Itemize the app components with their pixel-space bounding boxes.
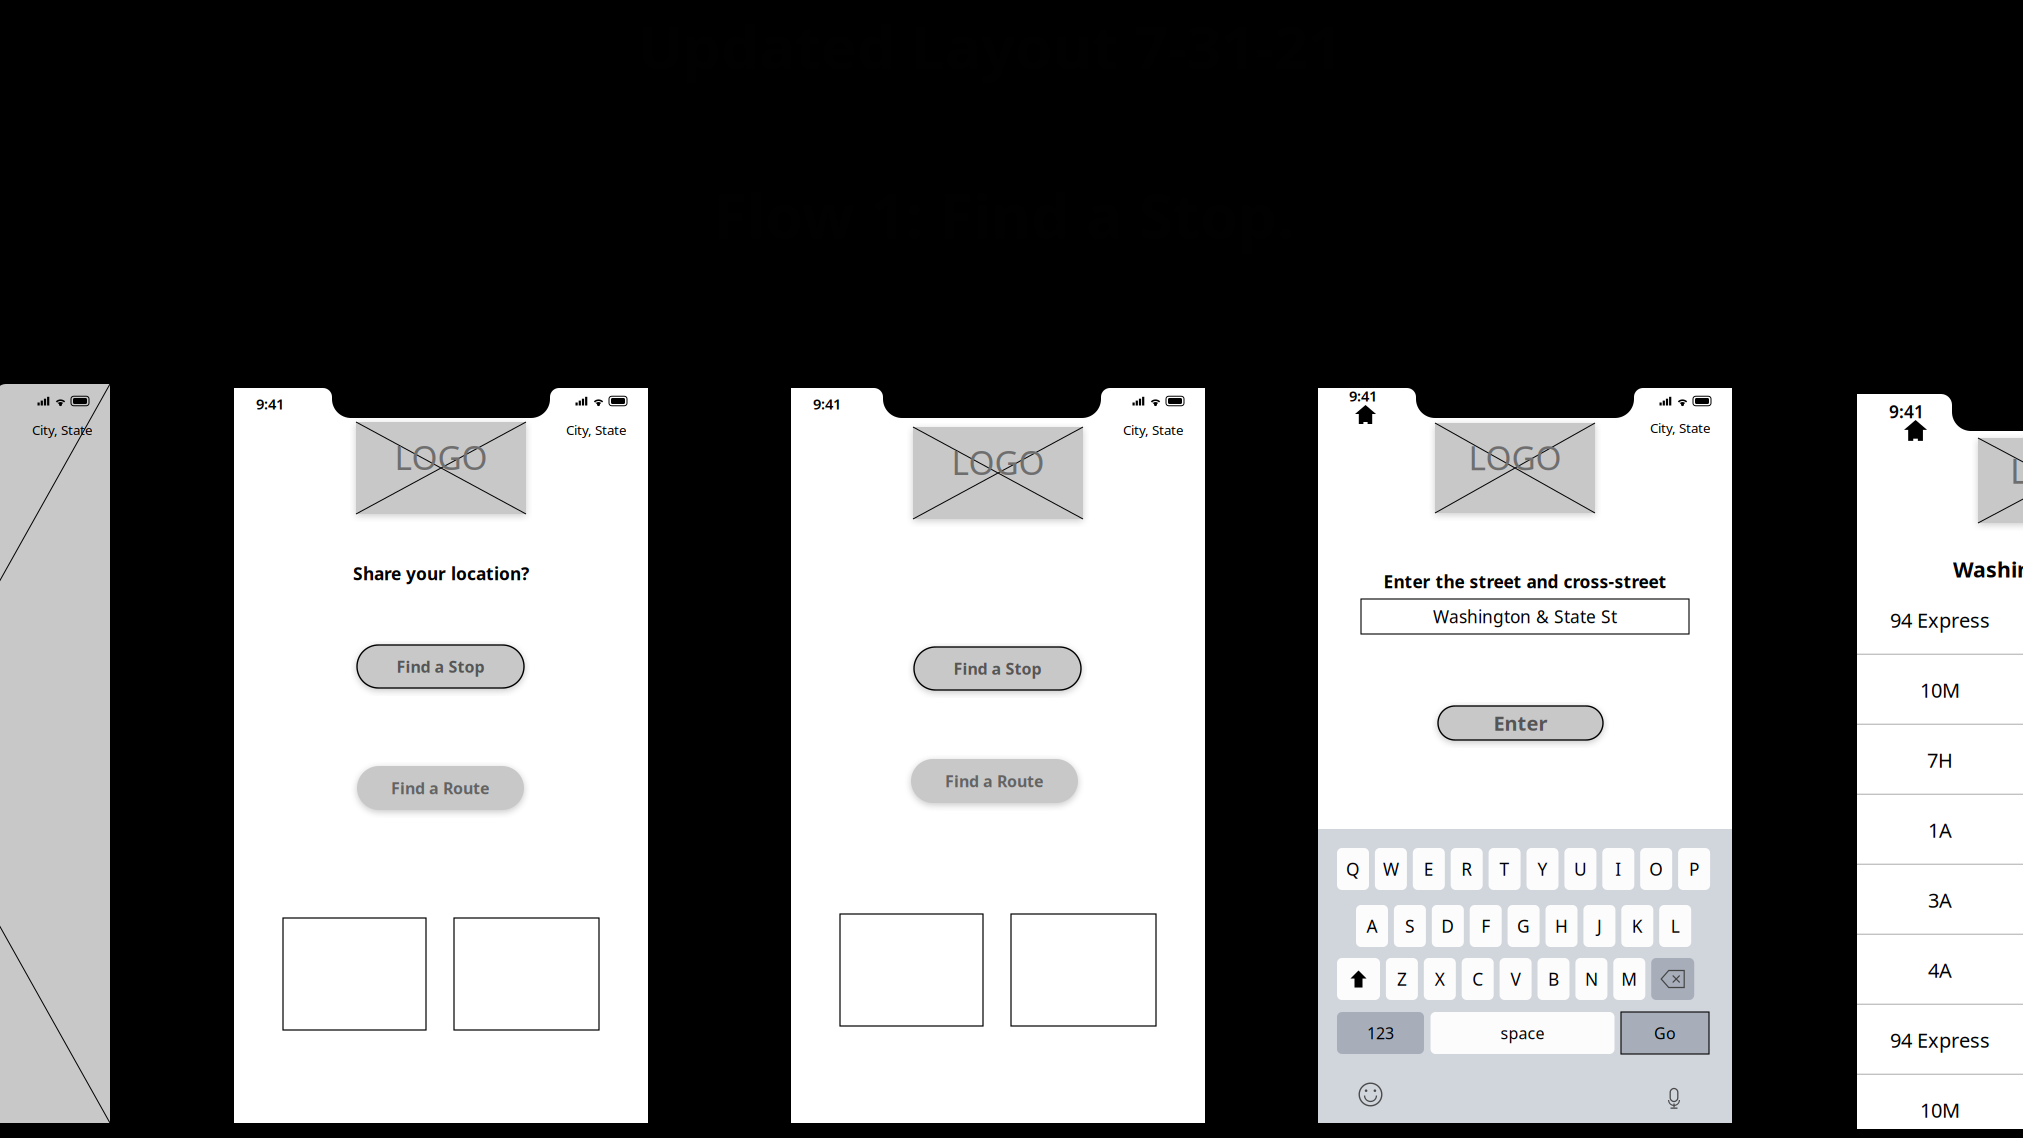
button[interactable]: Find a Route (357, 766, 524, 810)
button[interactable]: L (1659, 905, 1691, 947)
button[interactable]: Placeholder card 2 (454, 918, 599, 1030)
button[interactable]: O (1640, 848, 1672, 890)
button[interactable]: I (1602, 848, 1634, 890)
button[interactable]: C (1462, 958, 1494, 1000)
button[interactable]: Find a Route (911, 759, 1078, 803)
button[interactable]: Dictate (1666, 1082, 1682, 1106)
button[interactable]: G (1508, 905, 1540, 947)
staticText: J (1597, 914, 1602, 937)
staticText: K (1632, 914, 1643, 937)
button[interactable]: 94 Express (1857, 1005, 2023, 1075)
staticText: Z (1397, 967, 1407, 990)
staticText: City, State (1650, 419, 1711, 437)
staticText: Y (1537, 857, 1547, 880)
button[interactable]: R (1451, 848, 1483, 890)
button[interactable]: W (1375, 848, 1407, 890)
staticText: F (1481, 914, 1490, 937)
staticText: Find a Route (391, 777, 490, 799)
staticText: 7H (1927, 747, 1953, 773)
staticText: Find a Stop (953, 658, 1041, 679)
button[interactable]: 7H (1857, 725, 2023, 795)
staticText: P (1689, 857, 1699, 880)
button[interactable]: Emoji keyboard (1358, 1082, 1383, 1107)
button[interactable]: 3A (1857, 865, 2023, 935)
button[interactable]: Z (1386, 958, 1418, 1000)
staticText: City, State (1123, 421, 1184, 439)
button[interactable]: J (1583, 905, 1615, 947)
button[interactable]: 123 (1337, 1012, 1424, 1054)
button[interactable]: B (1537, 958, 1569, 1000)
button[interactable]: N (1575, 958, 1607, 1000)
staticText: Washington & State St (1953, 555, 2023, 583)
staticText: V (1511, 967, 1521, 990)
staticText: H (1555, 914, 1568, 937)
button[interactable]: 94 Express (1857, 585, 2023, 655)
button[interactable]: D (1432, 905, 1464, 947)
staticText: Q (1346, 857, 1360, 880)
staticText: 9:41 (1889, 400, 1924, 423)
staticText: L (1671, 914, 1680, 937)
button[interactable]: P (1678, 848, 1710, 890)
staticText: E (1424, 857, 1434, 880)
staticText: 9:41 (1349, 386, 1377, 405)
button[interactable]: T (1489, 848, 1521, 890)
button[interactable]: space (1430, 1012, 1614, 1054)
staticText: City, State (566, 421, 627, 439)
button[interactable]: 10M (1857, 655, 2023, 725)
button[interactable]: Find a Stop (914, 647, 1081, 690)
button[interactable]: A (1356, 905, 1388, 947)
button[interactable]: 4A (1857, 935, 2023, 1005)
staticText: space (1500, 1022, 1544, 1044)
staticText: D (1441, 914, 1454, 937)
staticText: Go (1654, 1022, 1676, 1044)
button[interactable]: M (1613, 958, 1645, 1000)
staticText: R (1461, 857, 1472, 880)
button[interactable]: Delete (1651, 958, 1694, 1000)
staticText: 123 (1367, 1022, 1394, 1044)
staticText: G (1517, 914, 1530, 937)
staticText: X (1435, 967, 1445, 990)
button[interactable]: X (1424, 958, 1456, 1000)
button[interactable]: U (1564, 848, 1596, 890)
button[interactable]: Find a Stop (357, 645, 524, 688)
staticText: S (1405, 914, 1415, 937)
button[interactable]: Go (1621, 1012, 1709, 1054)
staticText: 4A (1928, 957, 1952, 983)
button[interactable]: 1A (1857, 795, 2023, 865)
staticText: Enter the street and cross-street (1383, 570, 1666, 593)
staticText: Find a Stop (396, 656, 484, 677)
staticText: 10M (1920, 1097, 1960, 1123)
button[interactable]: V (1500, 958, 1532, 1000)
staticText: Share your location? (353, 562, 529, 585)
button[interactable]: Y (1526, 848, 1558, 890)
button[interactable]: 10M (1857, 1075, 2023, 1138)
button[interactable]: E (1413, 848, 1445, 890)
staticText: 94 Express (1890, 1027, 1990, 1053)
button[interactable]: H (1545, 905, 1577, 947)
button[interactable]: Enter (1438, 706, 1603, 740)
button[interactable]: Q (1337, 848, 1369, 890)
button[interactable]: F (1470, 905, 1502, 947)
button[interactable]: Placeholder card 1 (840, 914, 983, 1026)
staticText: LOGO (1468, 435, 1561, 479)
staticText: U (1574, 857, 1587, 880)
button[interactable]: Shift (1337, 958, 1380, 1000)
button[interactable]: K (1621, 905, 1653, 947)
staticText: 10M (1920, 677, 1960, 703)
staticText: O (1649, 857, 1663, 880)
staticText: 94 Express (1890, 607, 1990, 633)
staticText: LOGO (951, 440, 1044, 484)
staticText: C (1472, 967, 1483, 990)
staticText: Enter (1493, 710, 1547, 736)
button[interactable]: Placeholder card 2 (1011, 914, 1156, 1026)
staticText: 3A (1928, 887, 1952, 913)
button[interactable]: Placeholder card 1 (283, 918, 426, 1030)
button[interactable]: S (1394, 905, 1426, 947)
staticText: 9:41 (813, 394, 841, 413)
staticText: B (1548, 967, 1559, 990)
staticText: A (1366, 914, 1377, 937)
staticText: City, State (32, 421, 93, 439)
staticText: M (1621, 967, 1637, 990)
staticText: Washington & State St (1433, 605, 1617, 628)
